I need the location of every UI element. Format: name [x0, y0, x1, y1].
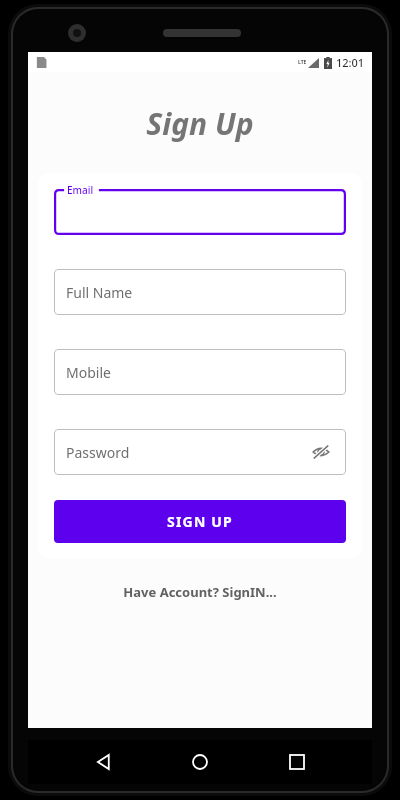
staticText: Sign Up [146, 103, 254, 144]
staticText: Mobile [66, 363, 334, 382]
staticText: Email [67, 183, 94, 197]
staticText: Password [66, 443, 308, 462]
button[interactable]: Password [54, 429, 346, 475]
staticText: Full Name [66, 283, 334, 302]
button[interactable]: Show password [308, 439, 334, 465]
button[interactable]: SIGN UP [54, 500, 346, 543]
button[interactable]: Back [81, 740, 125, 784]
staticText: Have Account? SignIN... [123, 583, 277, 601]
button[interactable]: Recent apps [275, 740, 319, 784]
button[interactable]: Email [54, 189, 346, 235]
staticText: 12:01 [336, 55, 365, 70]
button[interactable]: Have Account? SignIN... [111, 579, 289, 605]
button[interactable]: Mobile [54, 349, 346, 395]
button[interactable]: Full Name [54, 269, 346, 315]
staticText: LTE [298, 59, 307, 66]
staticText: SIGN UP [167, 512, 233, 531]
button[interactable]: Home [178, 740, 222, 784]
